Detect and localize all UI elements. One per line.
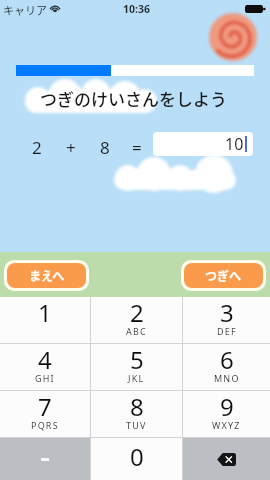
staticText: キャリア xyxy=(3,2,47,18)
staticText: 4 xyxy=(38,343,52,376)
staticText: GHI xyxy=(35,372,55,384)
staticText: TUV xyxy=(126,419,147,431)
staticText: 1 xyxy=(38,296,52,329)
staticText: PQRS xyxy=(31,419,59,431)
staticText: 2 xyxy=(32,136,42,159)
button[interactable]: Delete xyxy=(183,438,270,480)
staticText: ABC xyxy=(126,325,147,337)
staticText: 8 xyxy=(130,390,144,423)
staticText: MNO xyxy=(214,372,240,384)
button[interactable]: 0 xyxy=(91,438,182,480)
staticText: 2 xyxy=(130,296,144,329)
staticText: つぎへ xyxy=(205,267,242,284)
staticText: DEF xyxy=(217,325,237,337)
button[interactable]: 4 xyxy=(0,344,90,390)
staticText: 7 xyxy=(38,390,52,423)
staticText: WXYZ xyxy=(212,419,241,431)
staticText: 5 xyxy=(130,343,144,376)
staticText: = xyxy=(132,136,142,159)
staticText: 6 xyxy=(220,343,234,376)
button[interactable]: 2 xyxy=(91,297,182,343)
button[interactable]: まえへ xyxy=(7,263,86,288)
staticText: 10:36 xyxy=(123,2,150,16)
staticText: 3 xyxy=(220,296,234,329)
staticText: つぎのけいさんをしよう xyxy=(40,86,227,111)
button[interactable]: 10 xyxy=(153,132,253,156)
staticText: JKL xyxy=(128,372,145,384)
button[interactable]: 1 xyxy=(0,297,90,343)
button[interactable]: 5 xyxy=(91,344,182,390)
button[interactable]: 7 xyxy=(0,391,90,437)
staticText: 9 xyxy=(220,390,234,423)
staticText: + xyxy=(66,136,76,159)
other: Mascot xyxy=(206,10,260,64)
button[interactable]: 3 xyxy=(183,297,270,343)
button[interactable]: 6 xyxy=(183,344,270,390)
button[interactable]: 8 xyxy=(91,391,182,437)
staticText: まえへ xyxy=(29,267,65,284)
button[interactable]: 9 xyxy=(183,391,270,437)
staticText: 10 xyxy=(225,133,244,155)
button[interactable]: つぎへ xyxy=(184,263,263,288)
staticText: 0 xyxy=(130,440,144,473)
staticText: 8 xyxy=(100,136,110,159)
button[interactable] xyxy=(0,438,90,480)
other: Delete xyxy=(217,453,236,466)
